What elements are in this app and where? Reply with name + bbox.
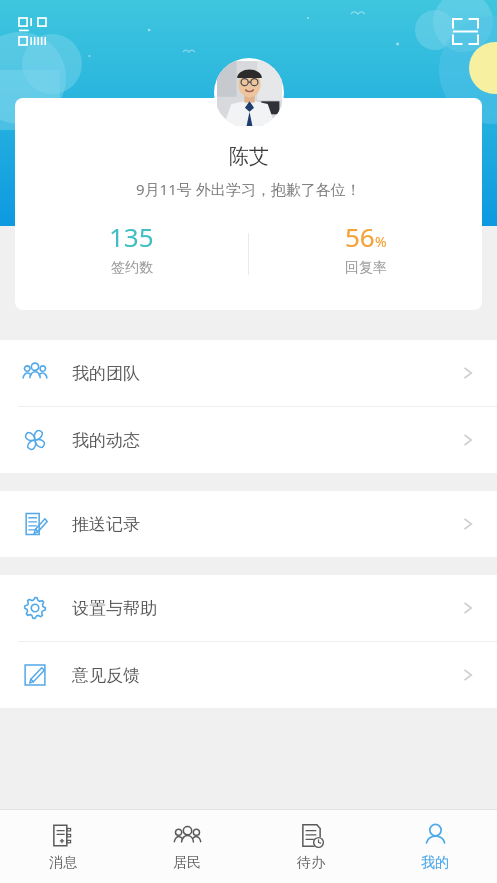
button[interactable]: 我的团队 xyxy=(0,340,497,406)
staticText: 我的团队 xyxy=(72,363,140,384)
staticText: 回复率 xyxy=(345,259,387,277)
staticText: 9月11号 外出学习，抱歉了各位！ xyxy=(136,179,361,199)
staticText: 推送记录 xyxy=(72,514,140,535)
staticText: 我的动态 xyxy=(72,430,140,451)
staticText: 设置与帮助 xyxy=(72,598,157,619)
button[interactable]: 我的动态 xyxy=(0,407,497,473)
staticText: 意见反馈 xyxy=(72,665,140,686)
button[interactable]: 设置与帮助 xyxy=(0,575,497,641)
staticText: 陈艾 xyxy=(229,144,269,169)
button[interactable]: Scan xyxy=(447,13,483,49)
staticText: 56 xyxy=(345,219,375,254)
staticText: 我的 xyxy=(421,854,449,872)
button[interactable]: 居民 xyxy=(125,810,249,883)
staticText: 135 xyxy=(109,219,154,254)
staticText: 消息 xyxy=(49,854,77,872)
button[interactable]: 我的 xyxy=(373,810,497,883)
button[interactable]: 待办 xyxy=(249,810,373,883)
staticText: 居民 xyxy=(173,854,201,872)
staticText: 待办 xyxy=(297,854,325,872)
staticText: % xyxy=(375,232,387,251)
button[interactable]: Profile photo xyxy=(214,58,284,128)
button[interactable]: 意见反馈 xyxy=(0,642,497,708)
button[interactable]: 推送记录 xyxy=(0,491,497,557)
button[interactable]: QR code xyxy=(14,13,50,49)
button[interactable]: 消息 xyxy=(0,810,125,883)
staticText: 签约数 xyxy=(111,259,153,277)
